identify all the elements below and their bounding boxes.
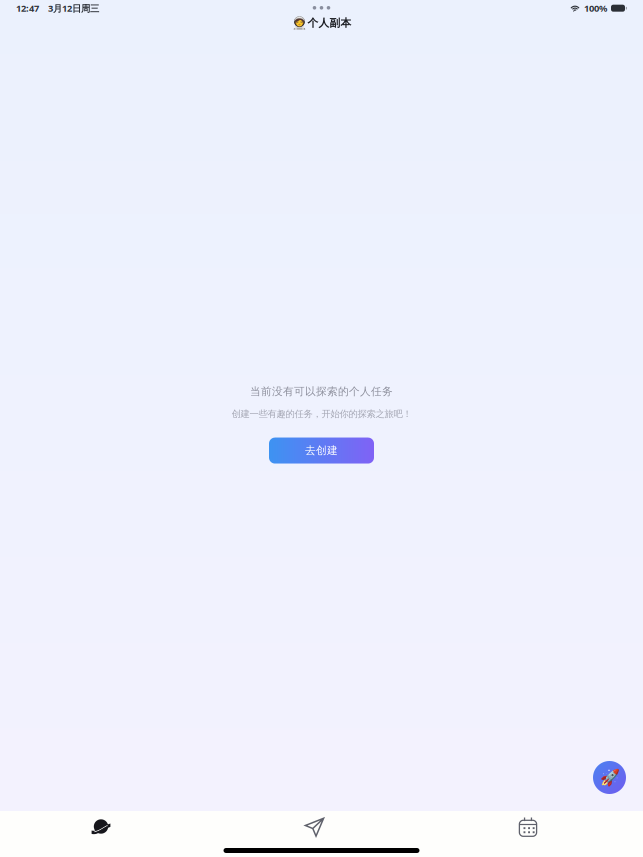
staticText: 🚀	[599, 768, 619, 787]
staticText: 当前没有可以探索的个人任务	[250, 385, 393, 398]
staticText: 创建一些有趣的任务，开始你的探索之旅吧！	[231, 408, 411, 420]
staticText: 100%	[584, 2, 607, 14]
staticText: 🧑‍🚀	[291, 16, 306, 30]
staticText: 去创建	[305, 444, 338, 457]
button[interactable]: Explore	[67, 814, 135, 840]
button[interactable]: Calendar	[494, 814, 562, 840]
button[interactable]: Create task	[593, 761, 626, 794]
button[interactable]: Tasks	[280, 814, 348, 840]
button[interactable]: 去创建	[269, 438, 374, 464]
staticText: 12:47	[16, 2, 39, 14]
staticText: 个人副本	[307, 16, 351, 29]
staticText: 3月12日周三	[48, 2, 99, 14]
